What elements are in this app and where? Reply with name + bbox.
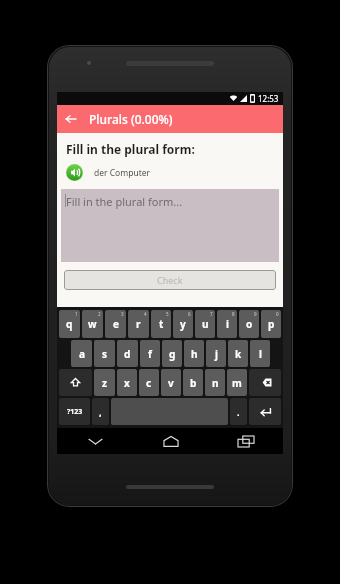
button[interactable]: o [239, 310, 259, 338]
button[interactable]: Recent apps [208, 428, 283, 454]
staticText: z [102, 376, 107, 390]
staticText: 9 [254, 311, 257, 317]
button[interactable]: s [94, 340, 115, 367]
button[interactable]: x [117, 369, 137, 396]
staticText: a [79, 347, 85, 361]
staticText: 8 [232, 311, 235, 317]
button[interactable]: Play audio [66, 164, 151, 181]
button[interactable]: ?123 [59, 398, 90, 425]
button[interactable]: Fill in the plural form... [61, 189, 279, 262]
staticText: k [235, 347, 242, 361]
staticText: m [232, 376, 242, 390]
staticText: f [148, 347, 152, 361]
staticText: der Computer [94, 167, 151, 179]
staticText: v [168, 376, 174, 390]
staticText: 1 [75, 311, 78, 317]
staticText: o [246, 317, 253, 331]
button[interactable]: Shift [59, 369, 92, 396]
staticText: ?123 [67, 407, 83, 417]
button[interactable]: n [205, 369, 225, 396]
button[interactable]: h [184, 340, 204, 367]
button[interactable]: f [140, 340, 160, 367]
staticText: w [88, 317, 97, 331]
staticText: 5 [166, 311, 169, 317]
button[interactable]: j [206, 340, 226, 367]
staticText: c [146, 376, 152, 390]
button[interactable]: u [195, 310, 215, 338]
button[interactable]: . [230, 398, 247, 425]
staticText: i [226, 317, 229, 331]
staticText: Check [157, 274, 183, 286]
button[interactable]: i [217, 310, 237, 338]
button[interactable]: q [59, 310, 80, 338]
staticText: Fill in the plural form... [66, 194, 183, 209]
staticText: u [202, 317, 209, 331]
button[interactable]: Home [133, 428, 208, 454]
staticText: s [102, 347, 108, 361]
staticText: e [113, 317, 119, 331]
button[interactable]: e [105, 310, 126, 338]
staticText: x [124, 376, 130, 390]
staticText: l [259, 347, 262, 361]
button[interactable]: , [92, 398, 109, 425]
staticText: h [191, 347, 198, 361]
staticText: q [66, 317, 73, 331]
button[interactable]: r [128, 310, 149, 338]
button[interactable]: t [151, 310, 171, 338]
staticText: . [237, 406, 240, 418]
staticText: 4 [144, 311, 147, 317]
button[interactable]: b [183, 369, 203, 396]
button[interactable]: y [173, 310, 193, 338]
button[interactable]: Enter [249, 398, 281, 425]
staticText: j [215, 347, 218, 361]
staticText: Plurals (0.00%) [89, 111, 173, 127]
staticText: 12:53 [258, 93, 279, 104]
button[interactable]: c [139, 369, 159, 396]
staticText: b [190, 376, 197, 390]
button[interactable]: d [117, 340, 138, 367]
button[interactable]: Back [57, 105, 85, 133]
button[interactable]: v [161, 369, 181, 396]
staticText: Fill in the plural form: [66, 141, 195, 157]
button[interactable]: z [94, 369, 115, 396]
button[interactable]: Check [64, 270, 276, 290]
button[interactable]: k [228, 340, 248, 367]
staticText: p [268, 317, 275, 331]
staticText: 7 [210, 311, 213, 317]
staticText: r [136, 317, 141, 331]
staticText: t [159, 317, 164, 331]
button[interactable]: Hide keyboard [57, 428, 133, 454]
staticText: 0 [276, 311, 279, 317]
staticText: , [99, 406, 102, 418]
staticText: g [169, 347, 176, 361]
button[interactable]: a [71, 340, 92, 367]
staticText: 3 [121, 311, 124, 317]
staticText: 6 [188, 311, 191, 317]
staticText: 2 [98, 311, 101, 317]
staticText: d [124, 347, 131, 361]
button[interactable]: Backspace [249, 369, 281, 396]
button[interactable]: l [250, 340, 270, 367]
staticText: n [212, 376, 219, 390]
staticText: y [180, 317, 186, 331]
button[interactable]: g [162, 340, 182, 367]
button[interactable]: w [82, 310, 103, 338]
button[interactable]: p [261, 310, 281, 338]
button[interactable]: m [227, 369, 247, 396]
